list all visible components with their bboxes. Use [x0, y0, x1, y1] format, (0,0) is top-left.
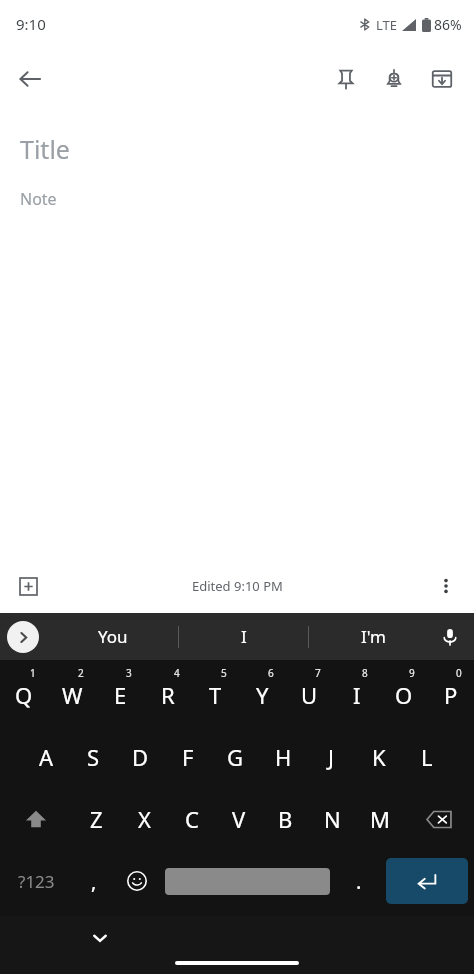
- button[interactable]: I: [179, 613, 308, 660]
- staticText: T: [209, 680, 222, 710]
- button[interactable]: Enter: [386, 858, 468, 904]
- button[interactable]: Space: [158, 850, 337, 912]
- button[interactable]: Add reminder: [370, 55, 418, 103]
- button[interactable]: Title: [20, 132, 454, 166]
- staticText: G: [227, 742, 244, 772]
- staticText: 9:10: [16, 14, 46, 34]
- staticText: ,: [91, 868, 97, 895]
- button[interactable]: J: [307, 726, 355, 788]
- staticText: L: [421, 742, 433, 772]
- button[interactable]: H: [259, 726, 307, 788]
- button[interactable]: Back: [6, 55, 54, 103]
- staticText: R: [161, 680, 175, 710]
- button[interactable]: 1: [0, 660, 48, 726]
- button[interactable]: I'm: [309, 613, 438, 660]
- button[interactable]: ,: [72, 850, 115, 912]
- staticText: V: [232, 804, 246, 834]
- button[interactable]: Hide keyboard: [82, 920, 118, 956]
- staticText: I: [353, 680, 361, 710]
- button[interactable]: V: [215, 788, 262, 850]
- staticText: H: [275, 742, 292, 772]
- staticText: O: [395, 680, 413, 710]
- staticText: 6: [268, 666, 274, 680]
- button[interactable]: S: [70, 726, 117, 788]
- staticText: J: [328, 742, 335, 772]
- button[interactable]: 9: [380, 660, 427, 726]
- staticText: E: [114, 680, 127, 710]
- staticText: 9: [409, 666, 415, 680]
- button[interactable]: 5: [192, 660, 239, 726]
- button[interactable]: More options: [424, 564, 468, 608]
- staticText: 0: [456, 666, 462, 680]
- button[interactable]: Note: [20, 188, 454, 210]
- staticText: N: [324, 804, 341, 834]
- staticText: W: [62, 680, 83, 710]
- staticText: LTE: [376, 16, 398, 34]
- staticText: U: [301, 680, 318, 710]
- button[interactable]: ?123: [0, 850, 72, 912]
- button[interactable]: 7: [286, 660, 333, 726]
- staticText: ?123: [18, 870, 55, 893]
- button[interactable]: A: [23, 726, 70, 788]
- button[interactable]: .: [337, 850, 380, 912]
- staticText: M: [370, 804, 390, 834]
- staticText: B: [278, 804, 293, 834]
- button[interactable]: 6: [239, 660, 286, 726]
- button[interactable]: 0: [427, 660, 474, 726]
- button[interactable]: N: [309, 788, 356, 850]
- staticText: C: [185, 804, 199, 834]
- button[interactable]: F: [164, 726, 211, 788]
- button[interactable]: B: [262, 788, 309, 850]
- staticText: 5: [221, 666, 227, 680]
- staticText: 4: [174, 666, 180, 680]
- button[interactable]: Voice input: [432, 619, 468, 655]
- button[interactable]: K: [355, 726, 403, 788]
- staticText: I: [241, 625, 247, 648]
- staticText: 86%: [434, 15, 462, 34]
- staticText: 7: [315, 666, 321, 680]
- button[interactable]: Pin: [322, 55, 370, 103]
- button[interactable]: D: [117, 726, 164, 788]
- staticText: 3: [126, 666, 132, 680]
- staticText: P: [444, 680, 458, 710]
- button[interactable]: C: [168, 788, 215, 850]
- staticText: 8: [362, 666, 368, 680]
- button[interactable]: You: [48, 613, 178, 660]
- staticText: F: [182, 742, 194, 772]
- button[interactable]: G: [211, 726, 259, 788]
- button[interactable]: Add: [6, 564, 50, 608]
- button[interactable]: X: [120, 788, 168, 850]
- button[interactable]: 2: [48, 660, 96, 726]
- staticText: X: [138, 804, 151, 834]
- button[interactable]: More suggestions: [7, 621, 39, 653]
- button[interactable]: M: [356, 788, 403, 850]
- button[interactable]: Emoji: [115, 850, 158, 912]
- staticText: .: [356, 868, 362, 895]
- staticText: 1: [30, 666, 36, 680]
- button[interactable]: 4: [144, 660, 192, 726]
- button[interactable]: 3: [96, 660, 144, 726]
- staticText: S: [87, 742, 100, 772]
- staticText: Edited 9:10 PM: [192, 577, 283, 595]
- staticText: Z: [90, 804, 103, 834]
- button[interactable]: 8: [333, 660, 380, 726]
- staticText: A: [39, 742, 54, 772]
- staticText: 2: [78, 666, 84, 680]
- button[interactable]: Z: [72, 788, 120, 850]
- button[interactable]: Shift: [0, 788, 72, 850]
- staticText: Y: [256, 680, 269, 710]
- staticText: Q: [15, 680, 33, 710]
- staticText: D: [132, 742, 149, 772]
- staticText: I'm: [361, 625, 386, 648]
- staticText: You: [98, 625, 128, 648]
- button[interactable]: L: [403, 726, 451, 788]
- staticText: K: [372, 742, 386, 772]
- button[interactable]: Archive: [418, 55, 466, 103]
- button[interactable]: Backspace: [403, 788, 474, 850]
